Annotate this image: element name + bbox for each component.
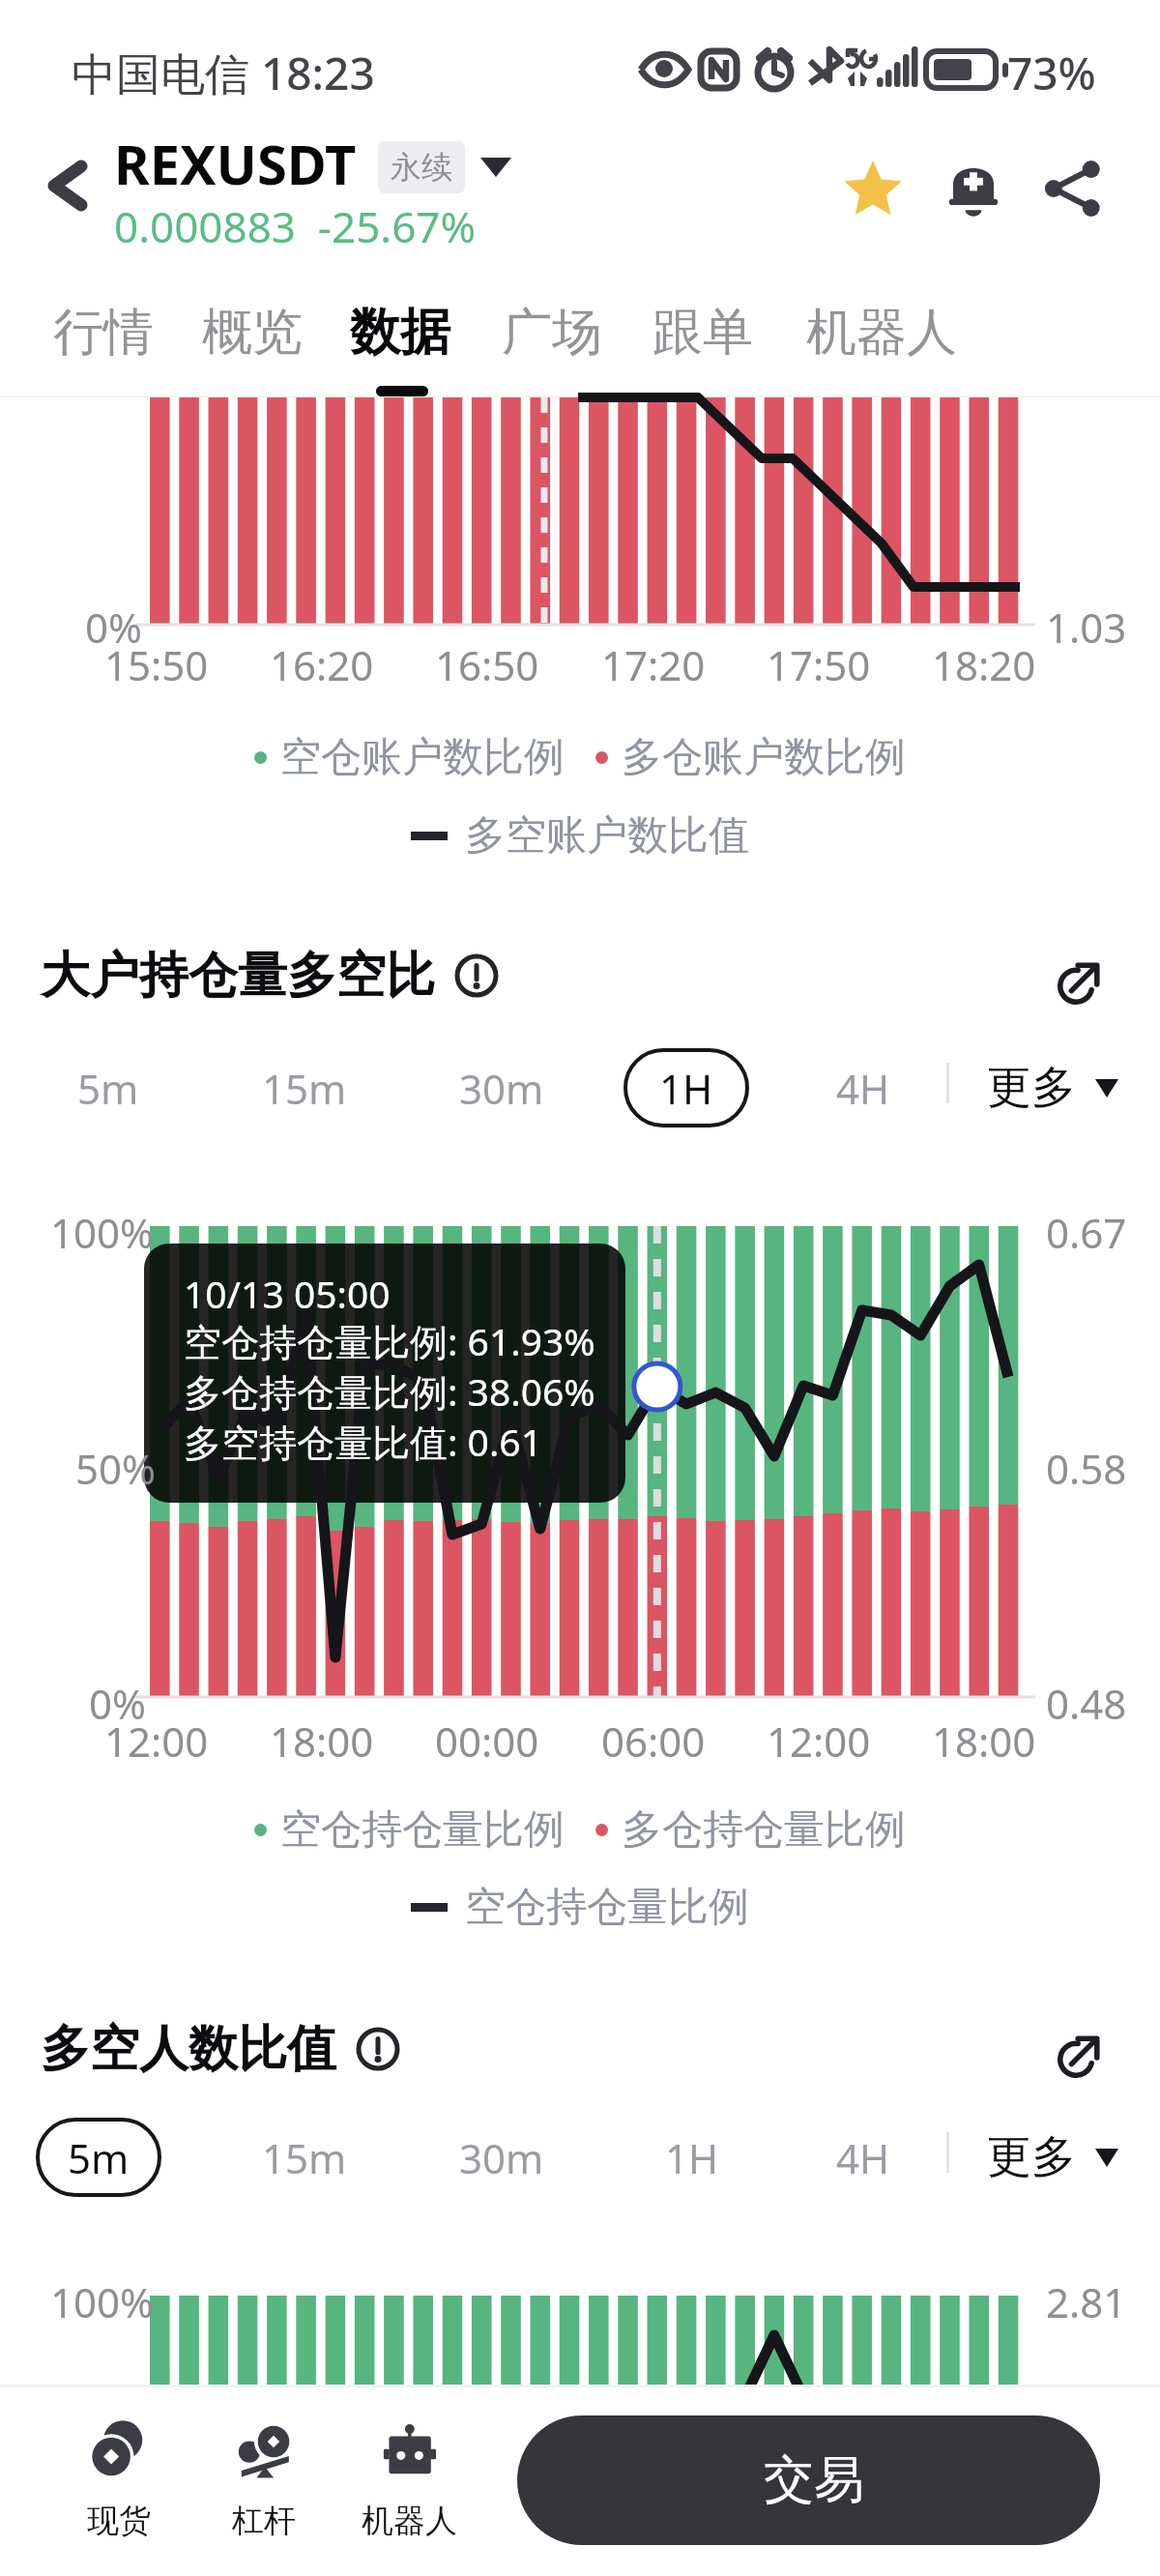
button[interactable]: Share [1029,145,1116,232]
button[interactable]: 机器人 [336,2413,481,2548]
staticText: 永续 [391,148,452,187]
button[interactable]: 跟单 [629,288,776,377]
staticText: 4H [836,1061,890,1116]
staticText: 17:20 [601,637,706,692]
staticText: 15m [262,2130,347,2185]
staticText: 概览 [202,301,303,365]
staticText: 多空人数比值 [41,2018,336,2080]
staticText: 多仓账户数比例 [622,732,906,783]
staticText: 0% [85,600,142,655]
button[interactable]: 广场 [478,288,625,377]
staticText: 1H [665,2130,719,2185]
staticText: 更多 [987,2129,1076,2185]
staticText: 100% [50,2274,154,2329]
button[interactable]: 1H [636,2122,748,2193]
staticText: 0.67 [1046,1205,1127,1260]
staticText: 100% [50,1205,154,1260]
button[interactable]: 15m [233,1052,376,1124]
staticText: 16:50 [435,637,539,692]
staticText: 4H [836,2130,890,2185]
staticText: 15:50 [104,637,209,692]
staticText: 现货 [87,2501,151,2541]
button[interactable]: 现货 [46,2413,191,2548]
staticText: REXUSDT [114,127,357,200]
button[interactable]: 5m [36,2118,161,2197]
staticText: 大户持仓量多空比 [41,945,435,1007]
staticText: 0.58 [1046,1441,1127,1496]
staticText: 更多 [987,1060,1076,1116]
button[interactable]: Open full chart [1044,945,1117,1018]
staticText: 18:00 [932,1713,1036,1769]
button[interactable]: 15m [233,2122,376,2193]
staticText: 15m [262,1061,347,1116]
staticText: 30m [459,2130,544,2185]
staticText: 空仓账户数比例 [280,732,565,783]
staticText: 行情 [53,301,154,365]
button[interactable]: 杠杆 [191,2413,336,2548]
staticText: 广场 [502,301,602,365]
button[interactable]: 1H [623,1048,749,1127]
button[interactable]: 4H [807,2122,919,2193]
button[interactable]: Open full chart [1044,2018,1117,2092]
staticText: 数据 [350,301,450,365]
staticText: 17:50 [767,637,871,692]
staticText: 0.000883 -25.67% [114,197,477,255]
staticText: 1H [659,1061,713,1116]
staticText: 1.03 [1046,600,1127,655]
staticText: 杠杆 [232,2501,296,2541]
button[interactable]: Favorite [829,145,916,232]
staticText: 5m [77,1061,139,1116]
staticText: 机器人 [362,2501,457,2541]
staticText: 12:00 [104,1713,209,1769]
staticText: 中国电信 18:23 [72,43,375,103]
staticText: 2.81 [1046,2274,1127,2329]
staticText: 73% [1007,43,1096,103]
staticText: 交易 [764,2448,864,2512]
staticText: 0% [89,1676,146,1731]
button[interactable]: 30m [430,2122,573,2193]
staticText: 0.48 [1046,1676,1127,1731]
button[interactable]: 更多 [987,1060,1126,1116]
button[interactable]: 4H [807,1052,919,1124]
staticText: 12:00 [767,1713,871,1769]
staticText: 空仓持仓量比例 [280,1804,565,1856]
button[interactable]: 交易 [517,2415,1100,2545]
button[interactable]: 更多 [987,2129,1126,2185]
button[interactable]: 行情 [30,288,177,377]
staticText: 18:00 [270,1713,374,1769]
staticText: 多空账户数比值 [465,810,749,862]
staticText: 机器人 [806,301,957,365]
button[interactable]: Back [27,147,108,224]
button[interactable]: 5m [48,1052,168,1124]
staticText: 50% [75,1441,156,1496]
staticText: 5m [68,2130,130,2185]
button[interactable]: Price alert [930,145,1017,232]
button[interactable]: 30m [430,1052,573,1124]
staticText: 00:00 [435,1713,539,1769]
staticText: 16:20 [270,637,374,692]
staticText: 18:20 [932,637,1036,692]
staticText: 10/13 05:00 空仓持仓量比例: 61.93% 多仓持仓量比例: 38.… [184,1268,595,1468]
staticText: 06:00 [601,1713,706,1769]
button[interactable]: 概览 [179,288,326,377]
button[interactable]: 数据 [327,288,474,377]
button[interactable]: 机器人 [783,288,980,377]
staticText: 30m [459,1061,544,1116]
staticText: 跟单 [652,301,753,365]
staticText: 多仓持仓量比例 [622,1804,906,1856]
staticText: 空仓持仓量比例 [465,1882,749,1933]
